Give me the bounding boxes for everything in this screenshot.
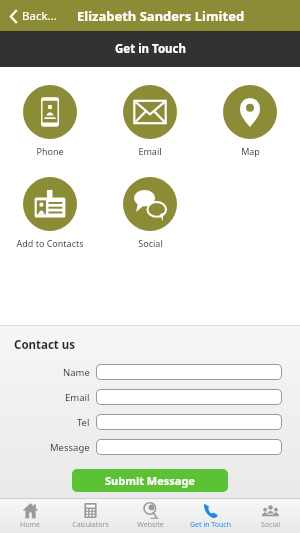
- button[interactable]: Map: [200, 83, 300, 159]
- staticText: Phone: [36, 145, 64, 157]
- staticText: Email: [65, 391, 90, 404]
- button[interactable]: [96, 439, 282, 455]
- button[interactable]: Social: [240, 498, 300, 533]
- staticText: Get in Touch: [190, 520, 231, 530]
- button[interactable]: Email: [100, 83, 200, 159]
- staticText: Contact us: [14, 337, 76, 353]
- other: Back: [10, 10, 18, 23]
- staticText: Map: [241, 145, 260, 157]
- button[interactable]: Submit Message: [72, 469, 228, 492]
- button[interactable]: Back: [8, 4, 59, 28]
- staticText: Tel: [77, 416, 90, 429]
- button[interactable]: Home: [0, 498, 60, 533]
- button[interactable]: [96, 414, 282, 430]
- staticText: Get in Touch: [115, 41, 186, 57]
- staticText: Social: [261, 520, 280, 530]
- button[interactable]: [96, 389, 282, 405]
- button[interactable]: Add to Contacts: [0, 175, 100, 251]
- button[interactable]: [96, 364, 282, 380]
- staticText: Name: [63, 366, 90, 379]
- staticText: Email: [138, 145, 162, 157]
- staticText: Submit Message: [105, 473, 195, 488]
- button[interactable]: Social: [100, 175, 200, 251]
- staticText: Social: [138, 237, 163, 249]
- button[interactable]: Get in Touch: [180, 498, 240, 533]
- staticText: Back...: [22, 8, 57, 24]
- staticText: Elizabeth Sanders Limited: [77, 7, 245, 25]
- staticText: Add to Contacts: [16, 237, 84, 249]
- button[interactable]: Calculators: [60, 498, 120, 533]
- staticText: Website: [137, 520, 164, 530]
- staticText: Message: [50, 441, 90, 454]
- button[interactable]: Website: [120, 498, 180, 533]
- staticText: Home: [20, 520, 40, 530]
- staticText: Calculators: [72, 520, 109, 530]
- button[interactable]: Phone: [0, 83, 100, 159]
